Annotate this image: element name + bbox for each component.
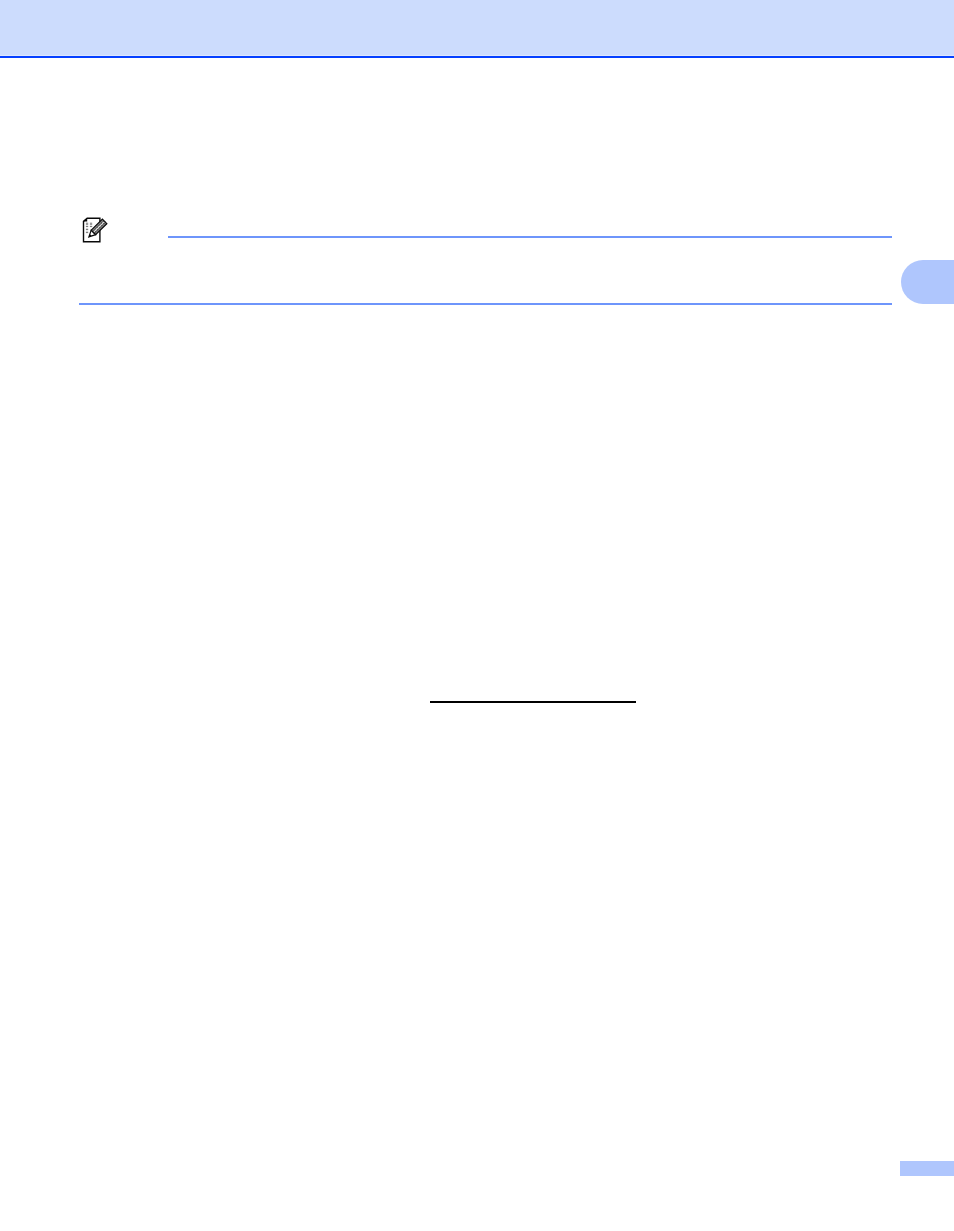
button[interactable]: Chapter tab — [901, 260, 954, 304]
other: Note — [82, 215, 110, 244]
